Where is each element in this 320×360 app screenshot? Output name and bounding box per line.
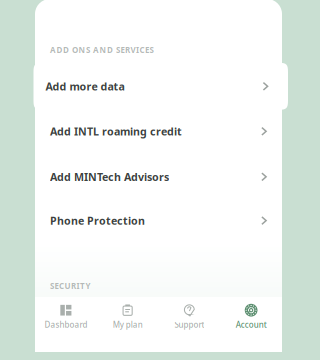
staticText: Support <box>174 319 204 330</box>
staticText: Dashboard <box>44 319 87 330</box>
button[interactable]: Add more data <box>33 63 288 110</box>
staticText: My plan <box>113 319 143 330</box>
staticText: SECURITY <box>50 281 90 291</box>
staticText: Phone Protection <box>50 213 145 228</box>
button[interactable]: Account <box>220 297 282 352</box>
staticText: Add more data <box>45 79 124 93</box>
staticText: Add INTL roaming credit <box>50 124 182 138</box>
button[interactable]: Dashboard <box>35 297 97 352</box>
button[interactable]: Add INTL roaming credit <box>35 109 282 153</box>
button[interactable]: My plan <box>97 297 159 352</box>
button[interactable]: Phone Protection <box>35 199 282 243</box>
staticText: Account <box>236 319 267 330</box>
staticText: Add MINTech Advisors <box>50 170 169 184</box>
button[interactable]: Add MINTech Advisors <box>35 155 282 199</box>
button[interactable]: Support <box>158 297 220 352</box>
staticText: ADD ONS AND SERVICES <box>50 45 153 55</box>
